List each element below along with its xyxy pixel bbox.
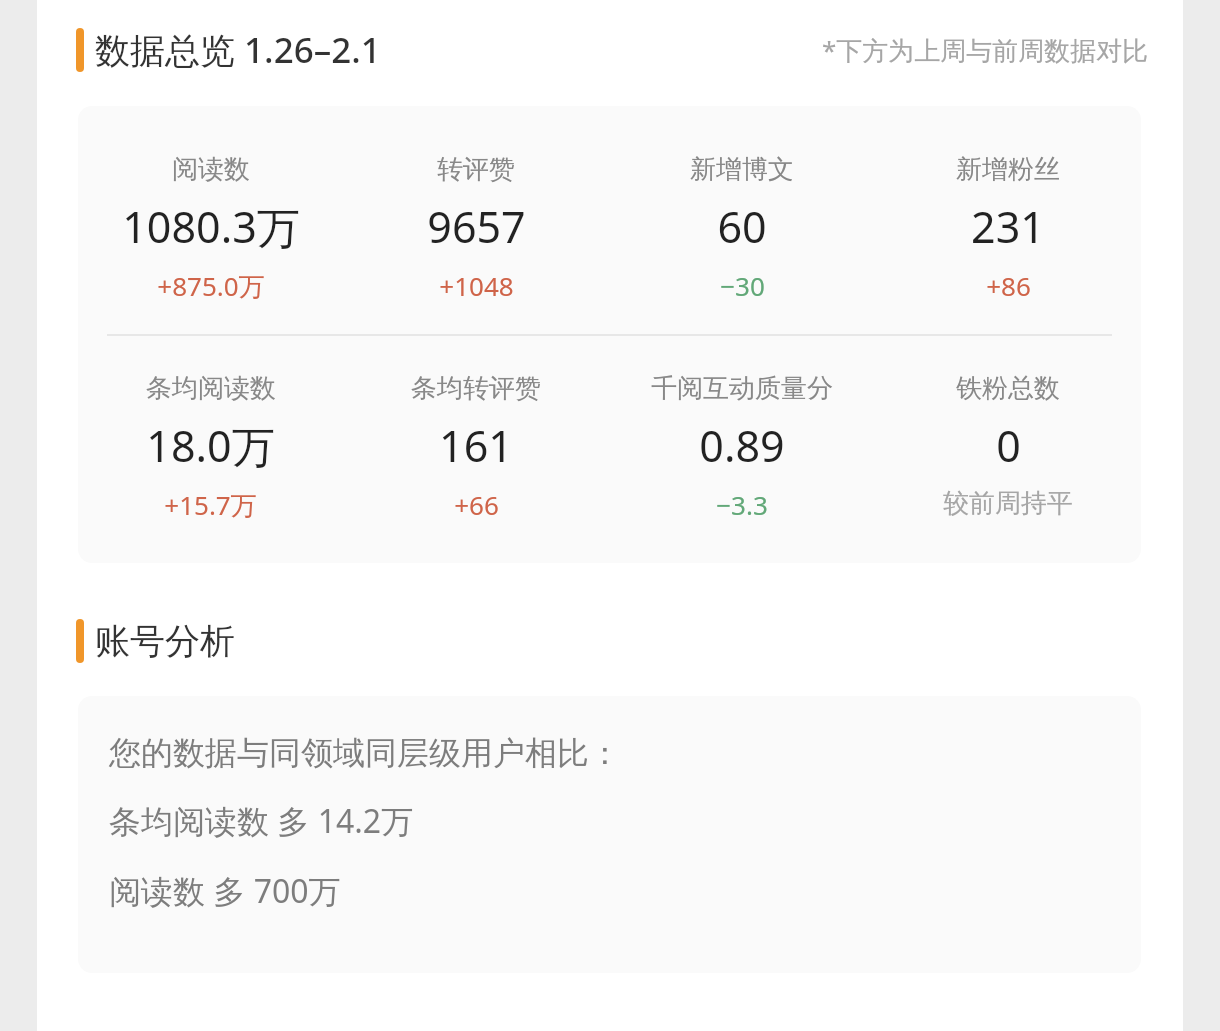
button[interactable]: 铁粉总数 (875, 372, 1141, 520)
staticText: 0 (996, 416, 1021, 475)
staticText: 231 (971, 197, 1045, 256)
staticText: 1080.3万 (122, 197, 300, 256)
staticText: 您的数据与同领域同层级用户相比： (109, 733, 621, 773)
staticText: +875.0万 (157, 268, 265, 304)
staticText: 较前周持平 (943, 487, 1073, 520)
staticText: +15.7万 (164, 487, 257, 523)
staticText: 数据总览 1.26–2.1 (95, 26, 381, 74)
staticText: 条均阅读数 (146, 372, 276, 405)
staticText: 新增博文 (690, 153, 794, 186)
button[interactable]: 条均阅读数 (78, 372, 343, 523)
staticText: 条均转评赞 (411, 372, 541, 405)
staticText: +86 (986, 268, 1031, 303)
staticText: 阅读数 (172, 153, 250, 186)
button[interactable]: 阅读数 (78, 153, 343, 304)
staticText: 18.0万 (146, 416, 275, 475)
staticText: 转评赞 (437, 153, 515, 186)
staticText: −30 (720, 268, 765, 303)
staticText: 161 (439, 416, 513, 475)
staticText: 千阅互动质量分 (651, 372, 833, 405)
button[interactable]: 新增博文 (609, 153, 875, 303)
staticText: +66 (454, 487, 499, 522)
staticText: 条均阅读数 多 14.2万 (109, 799, 414, 843)
staticText: +1048 (439, 268, 514, 303)
staticText: 60 (717, 197, 767, 256)
staticText: *下方为上周与前周数据对比 (822, 32, 1149, 68)
staticText: 0.89 (699, 416, 785, 475)
staticText: 阅读数 多 700万 (109, 869, 341, 913)
button[interactable]: 千阅互动质量分 (609, 372, 875, 522)
button[interactable]: 转评赞 (343, 153, 609, 303)
button[interactable]: 条均转评赞 (343, 372, 609, 522)
staticText: 9657 (427, 197, 526, 256)
staticText: 新增粉丝 (956, 153, 1060, 186)
staticText: 铁粉总数 (956, 372, 1060, 405)
staticText: 账号分析 (95, 619, 235, 663)
button[interactable]: 新增粉丝 (875, 153, 1141, 303)
staticText: −3.3 (716, 487, 768, 522)
